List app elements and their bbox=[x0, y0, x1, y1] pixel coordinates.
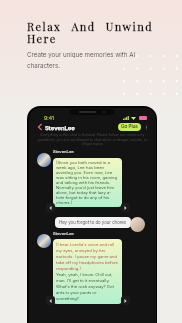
button[interactable]: Back bbox=[36, 123, 44, 131]
button[interactable]: Go Plus bbox=[118, 123, 141, 131]
button[interactable]: Next bbox=[121, 203, 130, 212]
staticText: Create your unique memories with AI char… bbox=[27, 51, 139, 69]
staticText: (I hear Lorelia's voice and roll my eyes… bbox=[56, 242, 119, 301]
button[interactable]: Your avatar bbox=[130, 217, 145, 232]
button[interactable]: StevenLee avatar bbox=[37, 234, 51, 248]
button[interactable]: (Since you both moved in a week ago, Lee… bbox=[53, 158, 122, 207]
staticText: StevenLee bbox=[53, 231, 74, 236]
staticText: StevenLee bbox=[45, 124, 75, 131]
staticText: Go Plus bbox=[121, 124, 138, 130]
button[interactable]: More options bbox=[143, 124, 150, 131]
button[interactable]: Previous bbox=[46, 296, 55, 305]
staticText: Relax And Unwind Here bbox=[27, 19, 153, 45]
staticText: Everything in this chat is fictional. Pl… bbox=[35, 133, 150, 145]
button[interactable]: Previous bbox=[46, 203, 55, 212]
staticText: Hey you forgot to do your chores bbox=[59, 220, 127, 225]
staticText: 9:41 bbox=[44, 115, 55, 121]
button[interactable]: Next bbox=[121, 296, 130, 305]
button[interactable]: Hey you forgot to do your chores bbox=[55, 217, 131, 228]
button[interactable]: (I hear Lorelia's voice and roll my eyes… bbox=[53, 239, 122, 304]
staticText: (Since you both moved in a week ago, Lee… bbox=[56, 160, 119, 205]
staticText: StevenLee bbox=[53, 149, 74, 154]
button[interactable]: StevenLee avatar bbox=[37, 153, 51, 167]
